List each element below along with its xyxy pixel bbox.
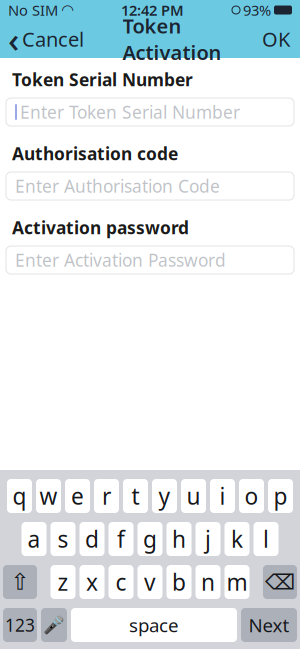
button[interactable]: i (210, 479, 235, 513)
staticText: Authorisation code (12, 142, 178, 165)
staticText: 93% (243, 0, 271, 20)
button[interactable]: z (50, 565, 75, 599)
staticText: 123 (5, 613, 35, 636)
staticText: c (115, 567, 126, 597)
button[interactable]: b (166, 565, 191, 599)
staticText: ‹ (8, 16, 19, 62)
staticText: No SIM (8, 0, 58, 20)
button[interactable]: Enter Activation Password (6, 246, 294, 274)
button[interactable]: m (224, 565, 249, 599)
staticText: ⇧ (10, 569, 29, 595)
staticText: z (57, 567, 68, 597)
button[interactable]: Next (241, 608, 297, 642)
button[interactable]: ‹ (0, 20, 92, 58)
staticText: h (172, 524, 186, 554)
staticText: Cancel (22, 26, 84, 52)
button[interactable]: Numbers (3, 608, 37, 642)
staticText: a (27, 524, 40, 554)
button[interactable]: j (195, 522, 220, 556)
button[interactable]: e (65, 479, 90, 513)
button[interactable]: h (166, 522, 191, 556)
staticText: b (172, 567, 186, 597)
button[interactable]: r (94, 479, 119, 513)
button[interactable]: s (50, 522, 75, 556)
staticText: u (186, 481, 200, 511)
staticText: o (244, 481, 258, 511)
staticText: Enter Token Serial Number (20, 100, 240, 123)
staticText: r (102, 481, 111, 511)
button[interactable]: f (108, 522, 133, 556)
staticText: t (131, 481, 139, 511)
button[interactable]: g (137, 522, 162, 556)
button[interactable]: a (21, 522, 46, 556)
staticText: n (201, 567, 215, 597)
staticText: p (273, 481, 287, 511)
button[interactable]: q (7, 479, 32, 513)
staticText: Activation password (12, 216, 189, 239)
button[interactable]: d (79, 522, 104, 556)
staticText: ⌫ (265, 570, 295, 594)
button[interactable]: Delete (263, 565, 297, 599)
staticText: Token Serial Number (12, 68, 193, 91)
button[interactable]: OK (252, 20, 300, 58)
button[interactable]: y (152, 479, 177, 513)
staticText: x (86, 567, 98, 597)
staticText: i (219, 481, 225, 511)
button[interactable]: c (108, 565, 133, 599)
button[interactable]: w (36, 479, 61, 513)
button[interactable]: Dictation (41, 608, 67, 642)
staticText: l (263, 524, 269, 554)
staticText: 🎤 (43, 615, 65, 635)
button[interactable]: n (195, 565, 220, 599)
staticText: y (158, 481, 170, 511)
staticText: f (117, 524, 125, 554)
button[interactable]: Enter Authorisation Code (6, 172, 294, 200)
button[interactable]: space (71, 608, 237, 642)
staticText: q (12, 481, 26, 511)
staticText: Enter Activation Password (15, 248, 226, 271)
staticText: s (57, 524, 68, 554)
button[interactable]: t (123, 479, 148, 513)
button[interactable]: x (79, 565, 104, 599)
staticText: d (85, 524, 99, 554)
staticText: g (143, 524, 157, 554)
staticText: Enter Authorisation Code (15, 174, 220, 197)
staticText: 12:42 PM (121, 0, 184, 20)
staticText: v (144, 567, 156, 597)
staticText: k (231, 524, 243, 554)
button[interactable]: l (253, 522, 278, 556)
staticText: ◠ (62, 2, 73, 18)
staticText: j (205, 524, 211, 554)
button[interactable]: u (181, 479, 206, 513)
staticText: w (39, 481, 57, 511)
staticText: OK (262, 26, 290, 52)
button[interactable]: p (268, 479, 293, 513)
staticText: Token Activation (122, 12, 221, 65)
button[interactable]: o (239, 479, 264, 513)
button[interactable]: k (224, 522, 249, 556)
staticText: Next (248, 613, 289, 637)
button[interactable]: Shift (3, 565, 37, 599)
staticText: m (226, 567, 247, 597)
staticText: e (71, 481, 84, 511)
staticText: space (129, 613, 179, 637)
button[interactable]: Enter Token Serial Number (6, 98, 294, 126)
button[interactable]: v (137, 565, 162, 599)
